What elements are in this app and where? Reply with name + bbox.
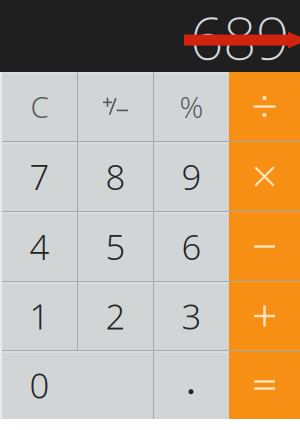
button[interactable]: 4 — [2, 212, 77, 281]
button[interactable]: Add — [229, 282, 300, 350]
button[interactable]: 3 — [154, 282, 229, 350]
staticText: 3 — [181, 293, 201, 339]
button[interactable]: 2 — [78, 282, 153, 350]
button[interactable]: Toggle sign — [78, 72, 153, 141]
button[interactable]: Divide — [229, 72, 300, 141]
button[interactable]: Equals — [229, 351, 300, 419]
button[interactable]: 5 — [78, 212, 153, 281]
button[interactable]: Subtract — [229, 212, 300, 281]
button[interactable]: 0 — [2, 351, 153, 419]
staticText: 2 — [105, 293, 125, 339]
button[interactable]: % — [154, 72, 229, 141]
staticText: 9 — [181, 153, 201, 199]
button[interactable]: 6 — [154, 212, 229, 281]
staticText: 5 — [105, 223, 125, 269]
staticText: 689 — [190, 0, 289, 76]
staticText: 4 — [29, 223, 49, 269]
staticText: % — [179, 87, 203, 126]
button[interactable]: C — [2, 72, 77, 141]
staticText: 7 — [29, 153, 49, 199]
staticText: 6 — [181, 223, 201, 269]
button[interactable]: Multiply — [229, 142, 300, 211]
button[interactable]: 8 — [78, 142, 153, 211]
staticText: C — [30, 87, 48, 126]
button[interactable]: Decimal point — [154, 351, 229, 419]
button[interactable]: 9 — [154, 142, 229, 211]
staticText: 1 — [29, 293, 49, 339]
staticText: 0 — [29, 362, 49, 408]
button[interactable]: 7 — [2, 142, 77, 211]
staticText: 8 — [105, 153, 125, 199]
button[interactable]: 1 — [2, 282, 77, 350]
